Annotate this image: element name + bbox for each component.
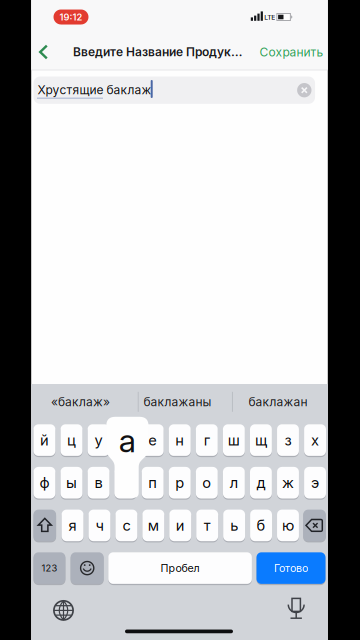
staticText: з	[284, 431, 291, 449]
staticText: с	[122, 517, 130, 534]
staticText: о	[202, 474, 211, 491]
staticText: Пробел	[161, 562, 200, 574]
staticText: д	[256, 474, 265, 491]
staticText: ц	[67, 431, 76, 449]
staticText: щ	[255, 431, 267, 449]
staticText: Сохранить	[259, 45, 323, 59]
staticText: л	[230, 474, 238, 491]
staticText: ф	[39, 474, 49, 491]
staticText: й	[40, 431, 49, 449]
staticText: баклажаны	[143, 395, 211, 409]
staticText: в	[95, 474, 103, 491]
staticText: э	[311, 474, 319, 491]
staticText: ш	[228, 431, 240, 449]
staticText: м	[148, 517, 159, 534]
staticText: ы	[66, 474, 77, 491]
staticText: к	[122, 431, 130, 449]
staticText: LTE	[264, 13, 275, 21]
staticText: «баклаж»	[51, 395, 110, 409]
staticText: б	[257, 517, 266, 534]
staticText: Хрустящие баклаж	[37, 83, 151, 97]
staticText: ч	[95, 517, 103, 534]
staticText: х	[311, 431, 319, 449]
staticText: р	[175, 474, 184, 491]
staticText: я	[68, 517, 76, 534]
staticText: п	[148, 474, 157, 491]
staticText: а	[119, 422, 136, 459]
staticText: т	[204, 517, 211, 534]
staticText: н	[175, 431, 184, 449]
staticText: и	[176, 517, 185, 534]
staticText: г	[204, 431, 210, 449]
staticText: ь	[230, 517, 238, 534]
staticText: баклажан	[248, 395, 307, 409]
staticText: Введите Название Продук…	[73, 45, 242, 59]
staticText: 19:12	[59, 11, 82, 22]
staticText: ж	[282, 474, 294, 491]
staticText: ю	[282, 517, 294, 534]
staticText: у	[95, 431, 103, 449]
staticText: е	[148, 431, 157, 449]
staticText: 123	[41, 563, 57, 574]
staticText: Готово	[274, 562, 308, 574]
